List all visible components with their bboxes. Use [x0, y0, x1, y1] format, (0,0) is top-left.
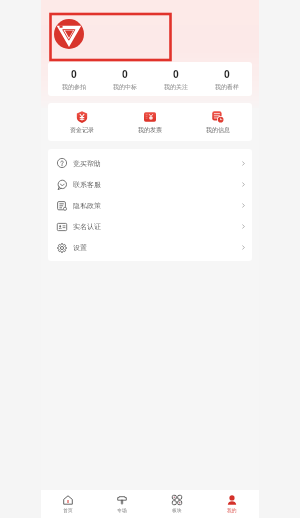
staticText: 我的参拍 [62, 83, 86, 91]
staticText: 联系客服 [73, 180, 101, 189]
button[interactable]: 我的信息 [184, 103, 252, 141]
staticText: 我的信息 [206, 126, 230, 134]
button[interactable]: 我的发票 [116, 103, 184, 141]
button[interactable]: 联系客服 [48, 174, 252, 195]
staticText: 首页 [63, 507, 73, 513]
staticText: 专场 [117, 507, 127, 513]
staticText: 竞买帮助 [73, 159, 101, 168]
staticText: 设置 [73, 243, 87, 252]
staticText: 隐私政策 [73, 201, 101, 210]
staticText: 0 [122, 67, 128, 81]
staticText: 我的发票 [138, 126, 162, 134]
button[interactable]: 板块 [149, 490, 204, 518]
staticText: 实名认证 [73, 222, 101, 231]
button[interactable]: 我的 [204, 490, 259, 518]
button[interactable]: 设置 [48, 237, 252, 258]
button[interactable]: User avatar [54, 19, 84, 49]
button[interactable]: 实名认证 [48, 216, 252, 237]
button[interactable]: 0 [99, 62, 150, 96]
button[interactable]: 0 [48, 62, 99, 96]
staticText: 资金记录 [70, 126, 94, 134]
button[interactable]: 首页 [41, 490, 95, 518]
button[interactable]: 0 [201, 62, 252, 96]
staticText: 我的 [227, 507, 237, 513]
button[interactable]: 专场 [95, 490, 149, 518]
staticText: 我的看样 [215, 83, 239, 91]
button[interactable]: 0 [150, 62, 201, 96]
button[interactable]: 资金记录 [48, 103, 116, 141]
staticText: 0 [71, 67, 77, 81]
staticText: 板块 [172, 507, 182, 513]
staticText: 0 [173, 67, 179, 81]
button[interactable]: 竞买帮助 [48, 152, 252, 174]
button[interactable]: 隐私政策 [48, 195, 252, 216]
staticText: 我的关注 [164, 83, 188, 91]
staticText: 0 [224, 67, 230, 81]
staticText: 我的中标 [113, 83, 137, 91]
